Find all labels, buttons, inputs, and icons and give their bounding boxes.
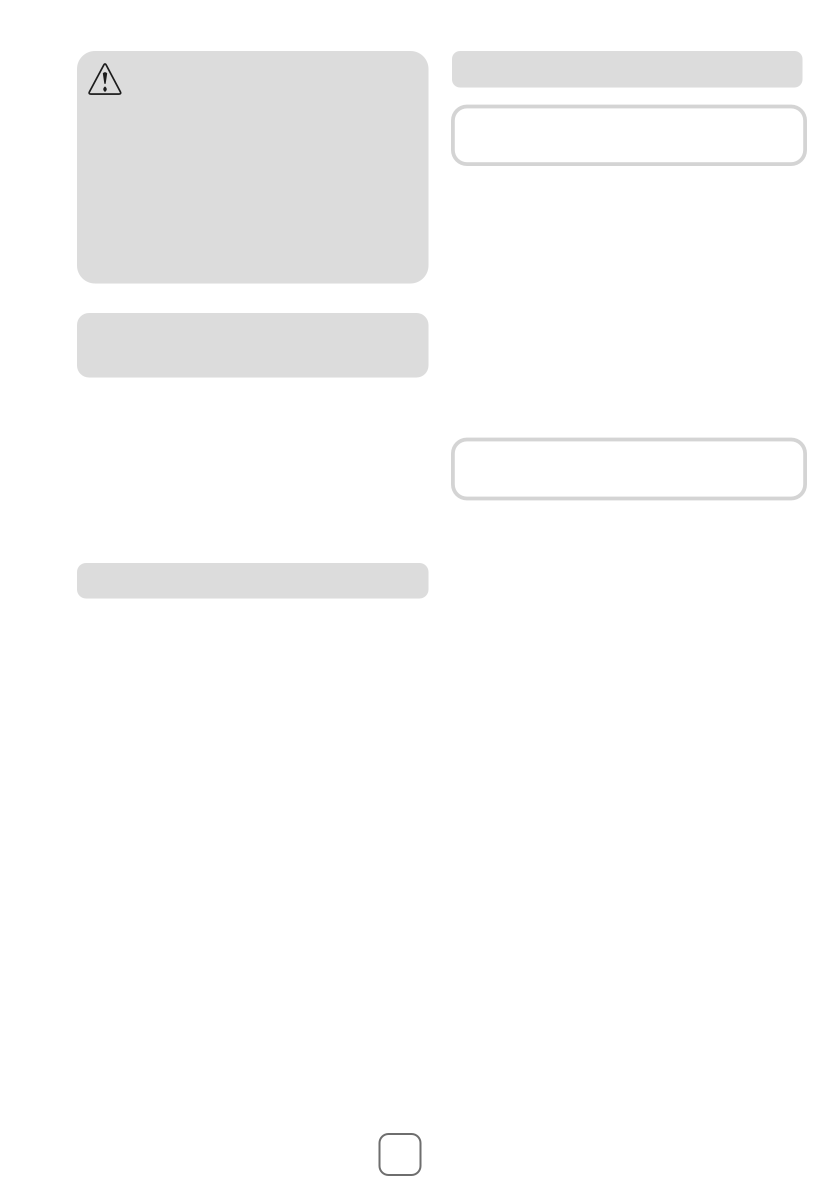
button[interactable]: Stop	[379, 1134, 420, 1175]
